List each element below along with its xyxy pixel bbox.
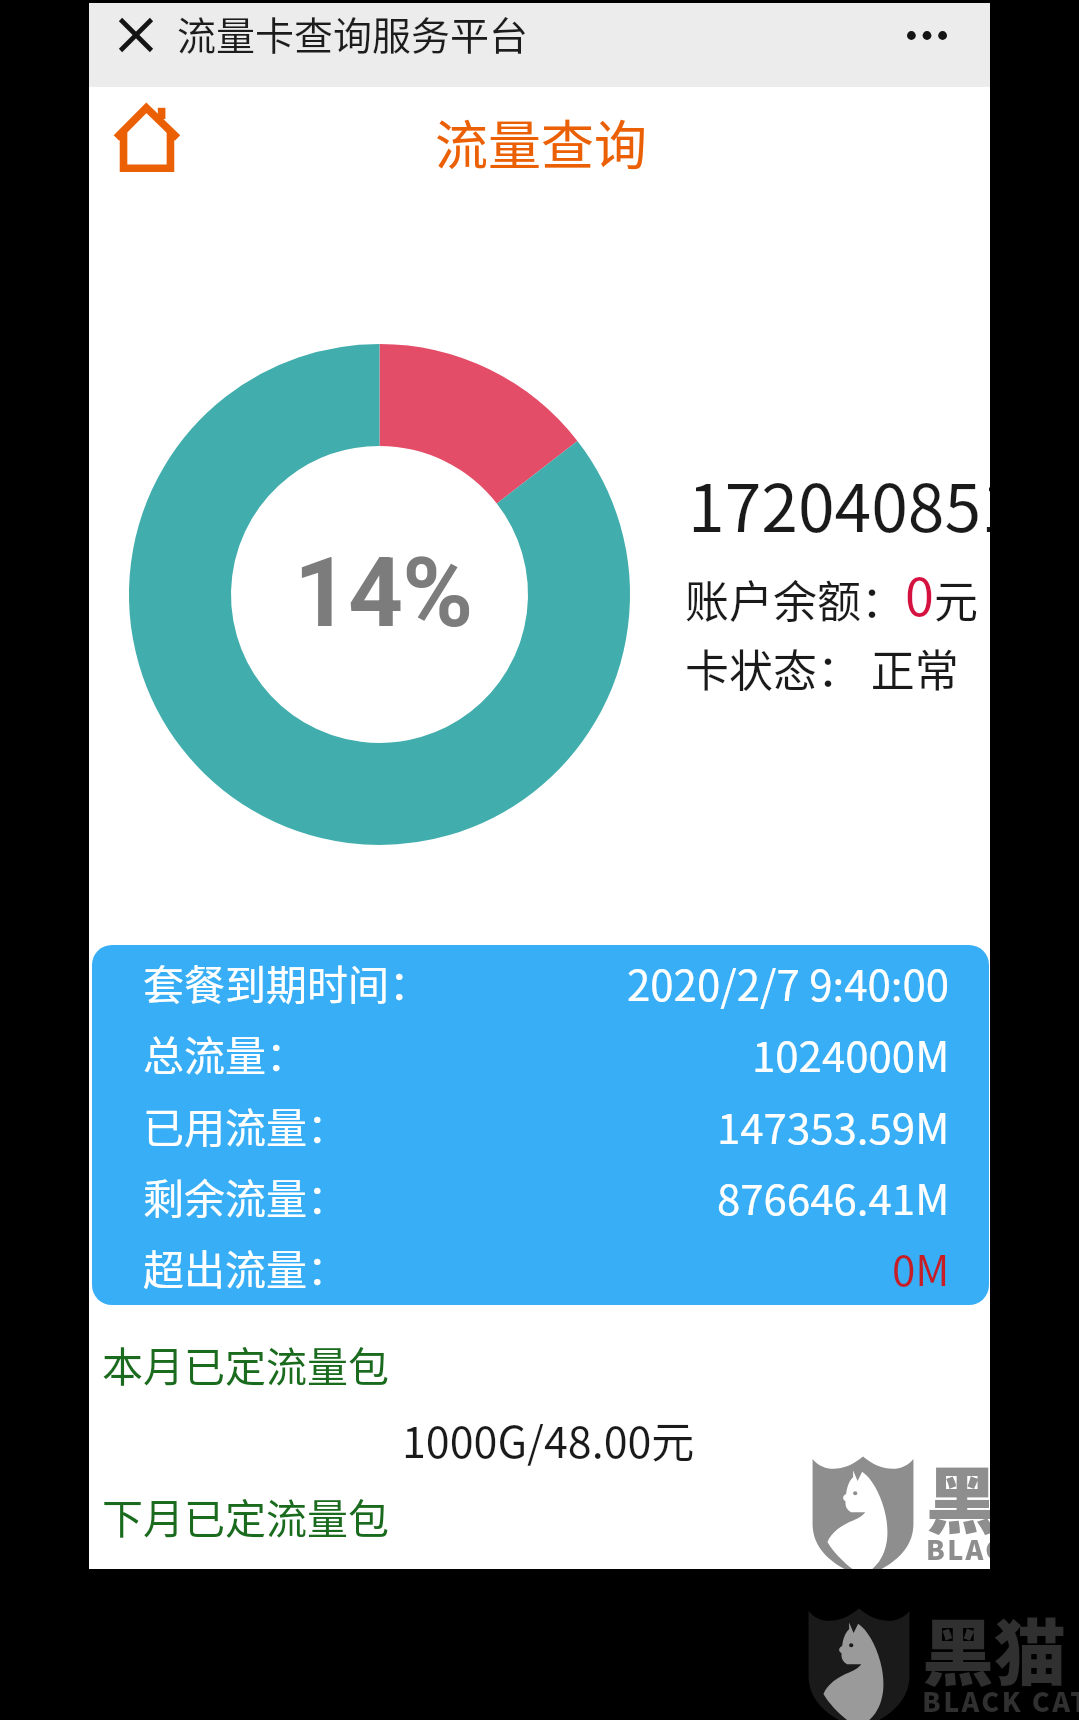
staticText: 剩余流量： [143, 1166, 348, 1225]
staticText: 卡状态： 正常 [685, 636, 959, 700]
staticText: 0M [892, 1237, 950, 1298]
staticText: 黑猫 [926, 1443, 990, 1547]
staticText: 流量卡查询服务平台 [177, 5, 529, 61]
staticText: 流量查询 [435, 104, 647, 181]
staticText: 147353.59M [717, 1095, 950, 1156]
staticText: 黑猫 [922, 1595, 1067, 1699]
button[interactable]: More options [887, 3, 967, 86]
staticText: 套餐到期时间： [143, 952, 430, 1011]
staticText: 已用流量： [143, 1095, 348, 1154]
button[interactable]: 下月已定流量包 [89, 1477, 990, 1547]
staticText: 元 [934, 567, 978, 631]
staticText: 876646.41M [717, 1166, 950, 1227]
staticText: 1024000M [752, 1023, 950, 1084]
button[interactable]: Close [98, 3, 173, 78]
staticText: 总流量： [143, 1023, 307, 1082]
staticText: 0 [905, 556, 934, 631]
staticText: BLACK CAT [922, 1681, 1079, 1720]
staticText: 本月已定流量包 [102, 1334, 389, 1393]
staticText: 14% [294, 537, 473, 650]
button[interactable]: Home [107, 98, 187, 178]
staticText: 172040851 [688, 455, 990, 551]
button[interactable]: 本月已定流量包 [89, 1325, 990, 1395]
staticText: 下月已定流量包 [102, 1486, 389, 1545]
staticText: 2020/2/7 9:40:00 [627, 952, 950, 1013]
staticText: BLACK CAT [926, 1529, 990, 1568]
staticText: 超出流量： [143, 1237, 348, 1296]
staticText: 1000G/48.00元 [402, 1408, 695, 1470]
staticText: 账户余额： [685, 567, 905, 631]
